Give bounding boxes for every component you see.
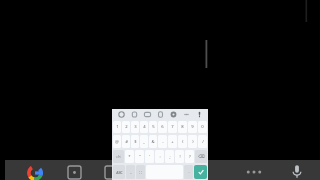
button[interactable]: : — [155, 150, 164, 163]
button[interactable]: ABC — [113, 165, 125, 179]
button[interactable]: 7 — [168, 121, 177, 133]
staticText: 8 — [181, 124, 184, 130]
button[interactable]: More — [180, 109, 193, 120]
button[interactable]: " — [135, 150, 144, 163]
staticText: . — [188, 169, 190, 175]
staticText: 5 — [152, 124, 155, 130]
button[interactable]: ) — [188, 135, 197, 148]
staticText: + — [171, 139, 174, 145]
button[interactable]: ; — [165, 150, 174, 163]
button[interactable]: ( — [178, 135, 187, 148]
button[interactable]: @ — [113, 135, 121, 148]
button[interactable]: Enter — [194, 165, 207, 179]
button[interactable]: ⌫ — [195, 150, 207, 163]
staticText: / — [202, 139, 204, 145]
staticText: , — [130, 169, 132, 175]
staticText: " — [139, 154, 141, 160]
button[interactable]: Google Search — [27, 165, 43, 180]
staticText: ∷ — [139, 170, 142, 175]
staticText: 4 — [143, 124, 146, 130]
button[interactable]: 5 — [149, 121, 157, 133]
button[interactable]: $ — [131, 135, 139, 148]
button[interactable]: Clipboard — [154, 109, 167, 120]
staticText: * — [128, 154, 131, 160]
button[interactable]: ? — [185, 150, 194, 163]
staticText: ? — [189, 154, 191, 160]
button[interactable]: GIF — [141, 109, 154, 120]
staticText: 7 — [171, 124, 174, 130]
button[interactable]: - — [158, 135, 167, 148]
staticText: ) — [192, 139, 194, 145]
button[interactable]: & — [149, 135, 157, 148]
button[interactable]: 9 — [188, 121, 197, 133]
button[interactable]: 4 — [140, 121, 148, 133]
staticText: _ — [143, 139, 145, 145]
staticText: ! — [179, 154, 181, 160]
button[interactable]: * — [125, 150, 134, 163]
button[interactable]: # — [122, 135, 130, 148]
staticText: ( — [182, 139, 184, 145]
staticText: 9 — [191, 124, 194, 130]
button[interactable]: 3 — [131, 121, 139, 133]
staticText: ; — [169, 154, 171, 160]
staticText: $ — [134, 139, 137, 145]
button[interactable]: + — [168, 135, 177, 148]
button[interactable]: ' — [145, 150, 154, 163]
staticText: =\< — [116, 155, 121, 159]
staticText: 0 — [201, 124, 204, 130]
staticText: & — [151, 139, 155, 145]
staticText: 3 — [134, 124, 137, 130]
button[interactable]: ∷ — [136, 165, 145, 179]
staticText: ⌫ — [198, 154, 205, 159]
button[interactable]: 6 — [158, 121, 167, 133]
button[interactable]: 0 — [198, 121, 207, 133]
button[interactable]: Stickers — [128, 109, 141, 120]
button[interactable]: Settings — [167, 109, 180, 120]
staticText: 6 — [161, 124, 164, 130]
staticText: @ — [115, 139, 119, 145]
button[interactable]: ! — [175, 150, 184, 163]
staticText: ' — [149, 154, 150, 160]
staticText: : — [159, 154, 161, 160]
button[interactable]: Voice input — [193, 109, 206, 120]
button[interactable]: Voice search — [291, 164, 303, 179]
button[interactable]: 1 — [113, 121, 121, 133]
button[interactable]: More options — [245, 167, 263, 177]
staticText: ABC — [116, 170, 123, 175]
button[interactable]: Screenshot — [68, 166, 81, 179]
staticText: - — [162, 139, 164, 145]
button[interactable]: _ — [140, 135, 148, 148]
staticText: 2 — [125, 124, 128, 130]
button[interactable]: Apps — [105, 166, 118, 179]
staticText: 1 — [116, 124, 119, 130]
button[interactable]: 2 — [122, 121, 130, 133]
button[interactable]: Gboard menu — [114, 109, 128, 120]
staticText: # — [125, 139, 128, 145]
button[interactable]: =\< — [113, 150, 124, 163]
button[interactable]: / — [198, 135, 207, 148]
button[interactable]: 8 — [178, 121, 187, 133]
